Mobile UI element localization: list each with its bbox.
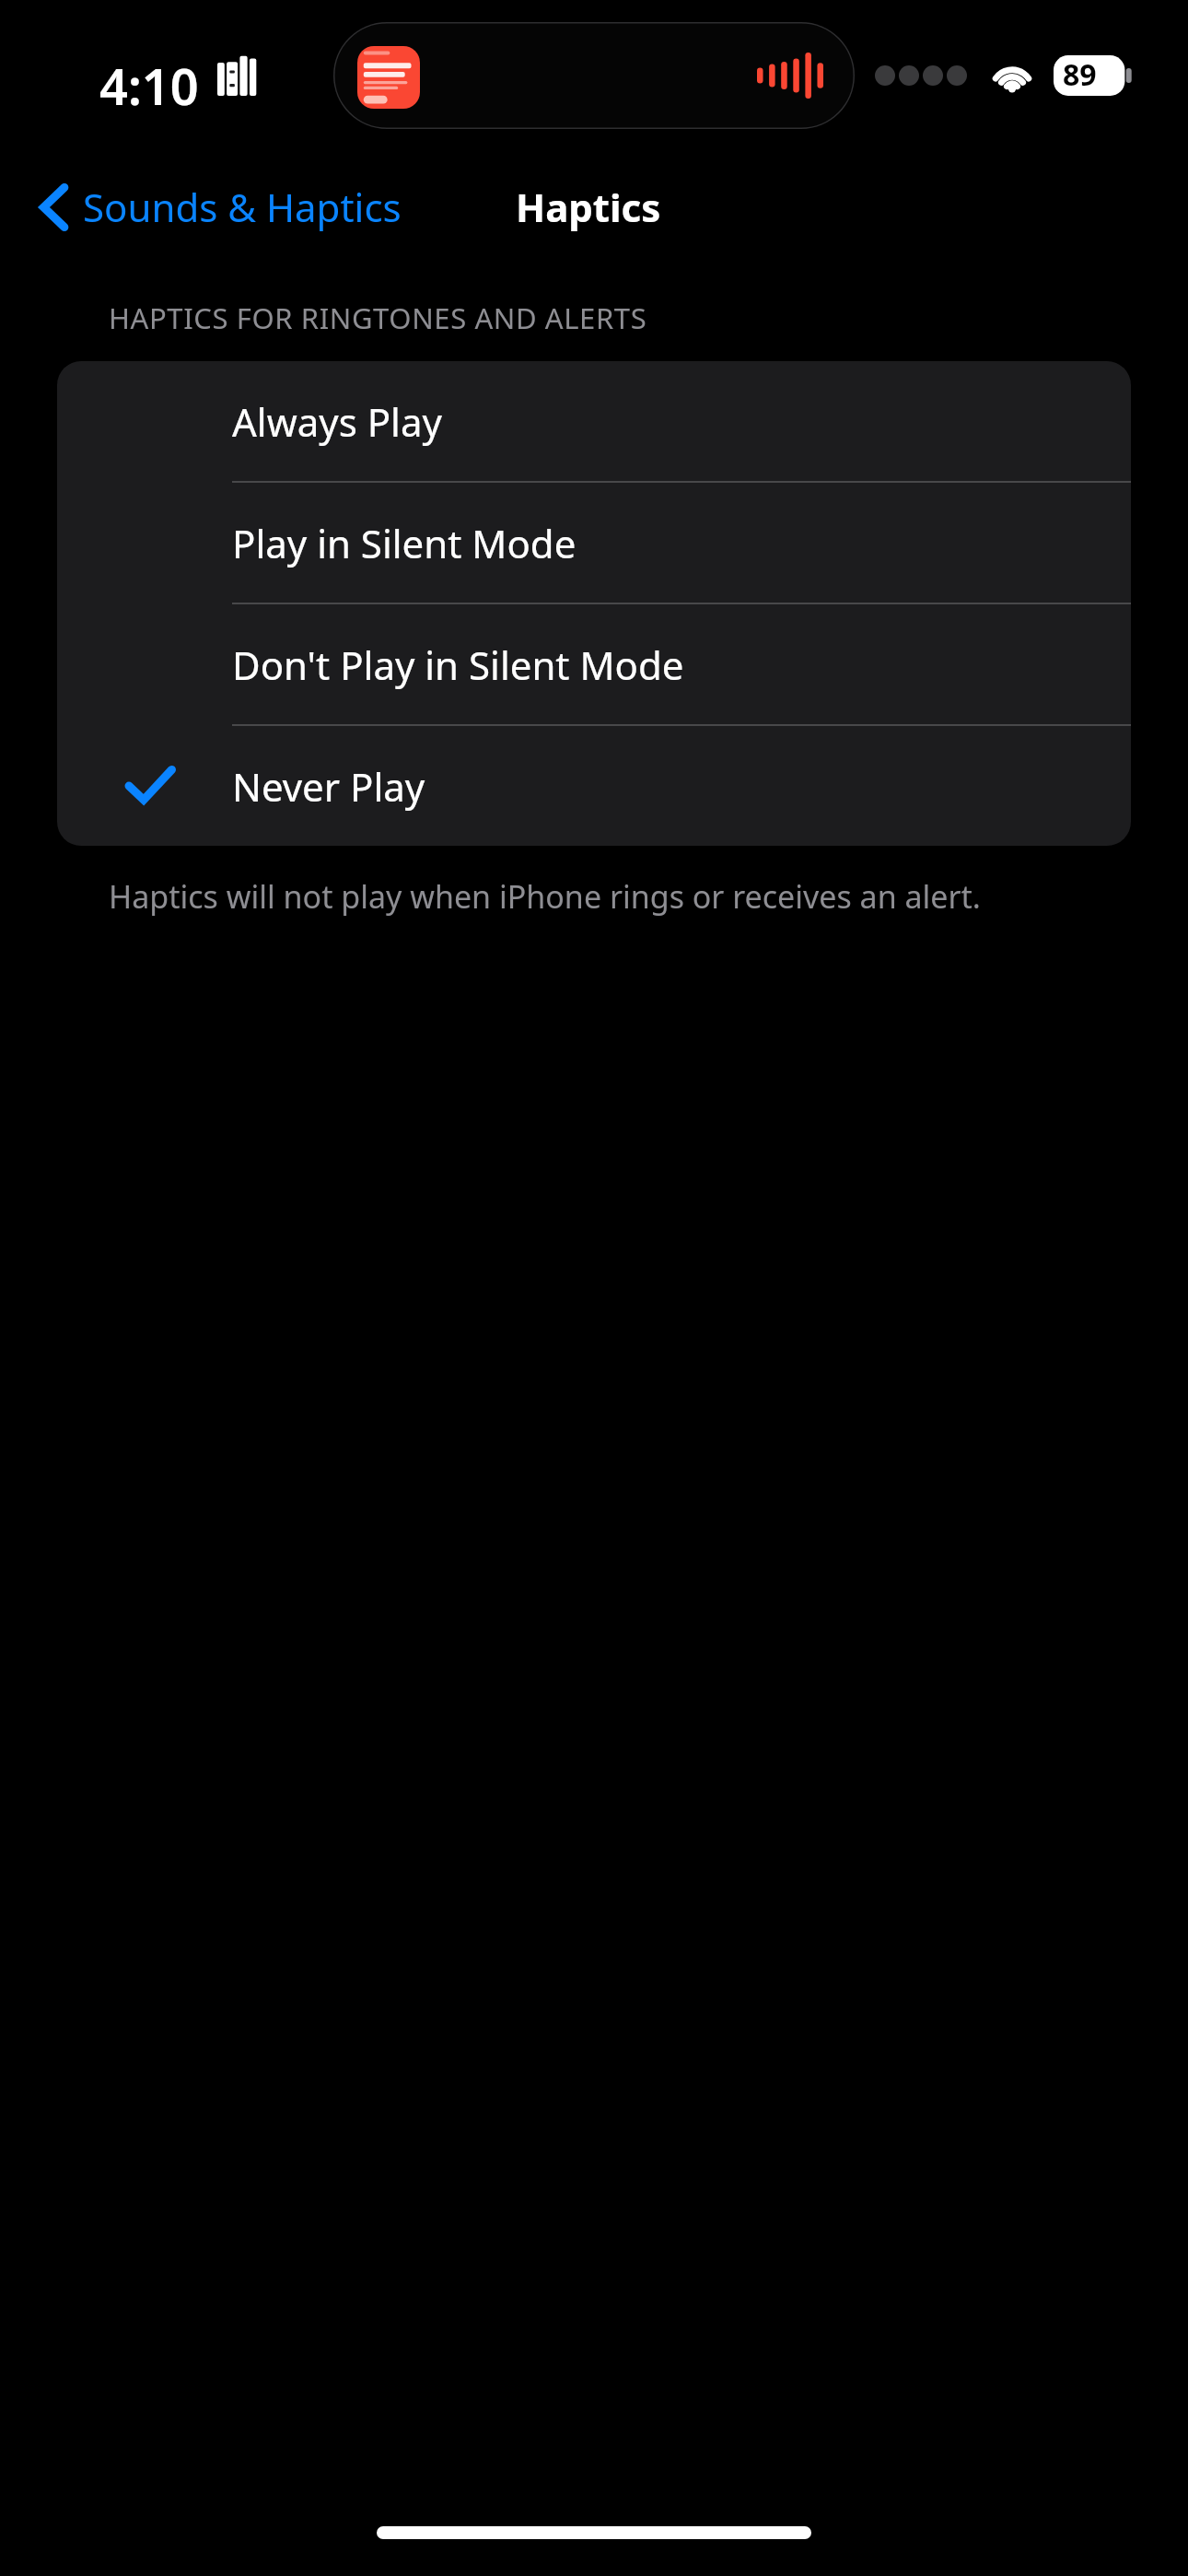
- button[interactable]: Always Play: [57, 361, 1131, 481]
- staticText: 4:10: [99, 52, 199, 120]
- staticText: Sounds & Haptics: [83, 181, 402, 233]
- button[interactable]: Never Play: [57, 726, 1131, 846]
- staticText: Always Play: [232, 395, 442, 448]
- button[interactable]: Sounds & Haptics: [28, 175, 413, 239]
- staticText: Haptics will not play when iPhone rings …: [109, 875, 981, 918]
- button[interactable]: Play in Silent Mode: [57, 483, 1131, 603]
- staticText: Play in Silent Mode: [232, 517, 577, 569]
- staticText: Don't Play in Silent Mode: [232, 638, 684, 691]
- staticText: HAPTICS FOR RINGTONES AND ALERTS: [109, 299, 647, 337]
- staticText: Haptics: [516, 181, 661, 233]
- staticText: 89: [1063, 54, 1097, 95]
- button[interactable]: Don't Play in Silent Mode: [57, 604, 1131, 724]
- staticText: Never Play: [232, 760, 425, 813]
